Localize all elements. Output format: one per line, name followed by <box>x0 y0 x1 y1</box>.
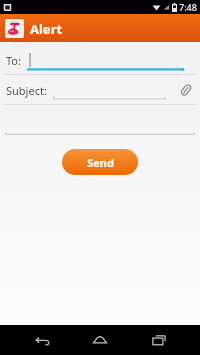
button[interactable]: Back <box>25 325 59 355</box>
staticText: Send <box>87 155 114 170</box>
staticText: Subject: <box>6 83 47 98</box>
button[interactable] <box>53 79 174 101</box>
button[interactable]: Attach file <box>176 80 196 100</box>
button[interactable]: Send <box>62 149 138 175</box>
button[interactable]: To: <box>0 48 200 72</box>
button[interactable]: Home <box>83 325 117 355</box>
staticText: Alert <box>30 20 63 38</box>
staticText: 7:48 <box>179 1 197 13</box>
staticText: To: <box>6 53 21 68</box>
button[interactable]: Recents <box>142 325 176 355</box>
other: App icon <box>5 19 24 38</box>
